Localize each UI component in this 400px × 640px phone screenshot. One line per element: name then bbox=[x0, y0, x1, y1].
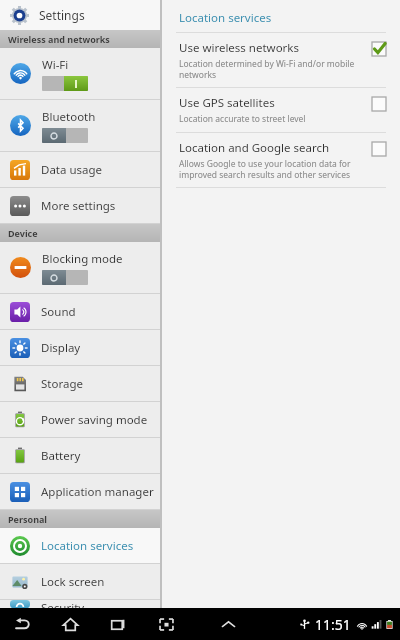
staticText: Location determined by Wi-Fi and/or mobi… bbox=[179, 58, 355, 80]
staticText: Security bbox=[41, 600, 85, 608]
staticText: Location accurate to street level bbox=[179, 113, 306, 125]
button[interactable] bbox=[42, 128, 88, 143]
staticText: Settings bbox=[39, 7, 85, 23]
button[interactable]: Storage bbox=[0, 366, 160, 401]
staticText: Wi-Fi bbox=[42, 57, 69, 73]
button[interactable]: Expand bbox=[214, 610, 242, 638]
button[interactable]: Back bbox=[8, 610, 36, 638]
button[interactable]: Screenshot bbox=[152, 610, 180, 638]
button[interactable] bbox=[372, 97, 386, 111]
button[interactable]: Battery bbox=[0, 438, 160, 473]
staticText: Sound bbox=[41, 304, 76, 320]
button[interactable]: Settings bbox=[0, 0, 160, 30]
button[interactable] bbox=[42, 270, 88, 285]
staticText: Storage bbox=[41, 376, 83, 392]
button[interactable]: Security bbox=[0, 600, 160, 608]
staticText: Application manager bbox=[41, 484, 154, 500]
button[interactable]: More settings bbox=[0, 188, 160, 223]
staticText: Lock screen bbox=[41, 574, 105, 590]
button[interactable]: Use wireless networks bbox=[162, 33, 400, 87]
staticText: Device bbox=[8, 227, 38, 239]
button[interactable]: Home bbox=[56, 610, 84, 638]
button[interactable] bbox=[42, 76, 88, 91]
staticText: Wireless and networks bbox=[8, 33, 110, 45]
staticText: Personal bbox=[8, 513, 48, 525]
staticText: 11:51 bbox=[315, 615, 351, 634]
staticText: Power saving mode bbox=[41, 412, 148, 428]
staticText: Use GPS satellites bbox=[179, 95, 275, 111]
button[interactable] bbox=[372, 142, 386, 156]
button[interactable]: Data usage bbox=[0, 152, 160, 187]
staticText: Use wireless networks bbox=[179, 40, 300, 56]
button[interactable]: Wi-Fi bbox=[0, 48, 160, 99]
button[interactable]: Recents bbox=[104, 610, 132, 638]
button[interactable]: Bluetooth bbox=[0, 100, 160, 151]
button[interactable]: Application manager bbox=[0, 474, 160, 509]
button[interactable]: Display bbox=[0, 330, 160, 365]
button[interactable]: Location services bbox=[0, 528, 160, 563]
staticText: Battery bbox=[41, 448, 81, 464]
button[interactable] bbox=[372, 42, 386, 56]
button[interactable]: Power saving mode bbox=[0, 402, 160, 437]
staticText: More settings bbox=[41, 198, 116, 214]
staticText: Allows Google to use your location data … bbox=[179, 158, 351, 180]
button[interactable]: Location and Google search bbox=[162, 133, 400, 187]
button[interactable]: Use GPS satellites bbox=[162, 88, 400, 132]
staticText: Blocking mode bbox=[42, 251, 123, 267]
staticText: Location services bbox=[41, 538, 134, 554]
staticText: Location and Google search bbox=[179, 140, 330, 156]
staticText: Display bbox=[41, 340, 81, 356]
staticText: Location services bbox=[179, 10, 272, 26]
staticText: Bluetooth bbox=[42, 109, 96, 125]
staticText: Data usage bbox=[41, 162, 103, 178]
button[interactable]: Blocking mode bbox=[0, 242, 160, 293]
button[interactable]: Lock screen bbox=[0, 564, 160, 599]
button[interactable]: Sound bbox=[0, 294, 160, 329]
